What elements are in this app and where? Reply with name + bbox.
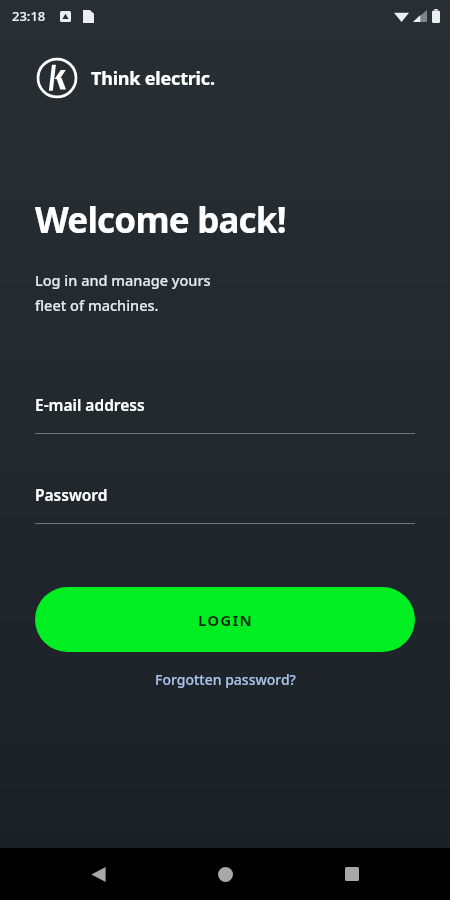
button[interactable]: Back xyxy=(69,848,127,900)
staticText: E-mail address xyxy=(35,394,145,415)
staticText: Forgotten password? xyxy=(155,670,296,689)
staticText: Password xyxy=(35,484,108,505)
staticText: 23:18 xyxy=(12,7,46,25)
staticText: Log in and manage yours fleet of machine… xyxy=(35,270,211,316)
button[interactable]: LOGIN xyxy=(35,587,415,652)
button[interactable]: Forgotten password? xyxy=(145,664,306,695)
staticText: Welcome back! xyxy=(35,196,286,244)
button[interactable]: E-mail address xyxy=(0,394,450,434)
button[interactable]: Home xyxy=(196,848,254,900)
button[interactable]: Recent apps xyxy=(323,848,381,900)
staticText: LOGIN xyxy=(198,610,253,630)
staticText: Think electric. xyxy=(91,66,215,91)
button[interactable]: Password xyxy=(0,484,450,524)
